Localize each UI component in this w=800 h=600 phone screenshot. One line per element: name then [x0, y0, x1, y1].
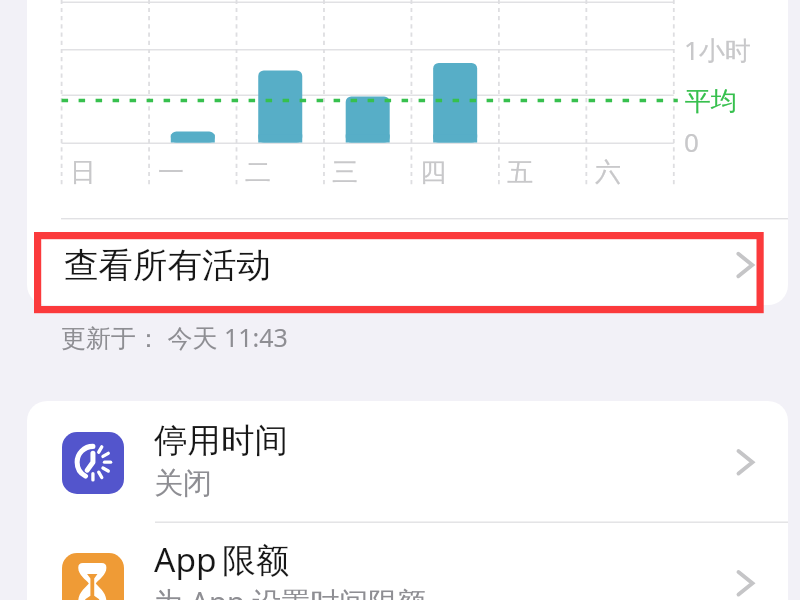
button[interactable]: App 限额	[27, 522, 788, 600]
staticText: 1小时	[684, 32, 751, 68]
staticText: 更新于： 今天 11:43	[61, 320, 288, 354]
staticText: 六	[595, 156, 621, 189]
button[interactable]: 停用时间	[27, 401, 788, 521]
other: 停用时间	[62, 432, 124, 494]
staticText: 0	[684, 124, 699, 159]
other: App 限额	[62, 553, 124, 600]
staticText: 为 App 设置时间限额	[154, 582, 427, 600]
staticText: 二	[245, 156, 271, 189]
staticText: 停用时间	[154, 420, 288, 462]
staticText: 平均	[685, 85, 737, 118]
staticText: 日	[70, 156, 96, 189]
staticText: 五	[507, 156, 533, 189]
button[interactable]: 查看所有活动	[27, 219, 788, 307]
staticText: 四	[420, 156, 446, 189]
staticText: 一	[158, 156, 184, 189]
staticText: 查看所有活动	[64, 244, 271, 287]
staticText: 三	[332, 156, 358, 189]
staticText: 关闭	[154, 465, 212, 502]
staticText: App 限额	[154, 536, 290, 582]
